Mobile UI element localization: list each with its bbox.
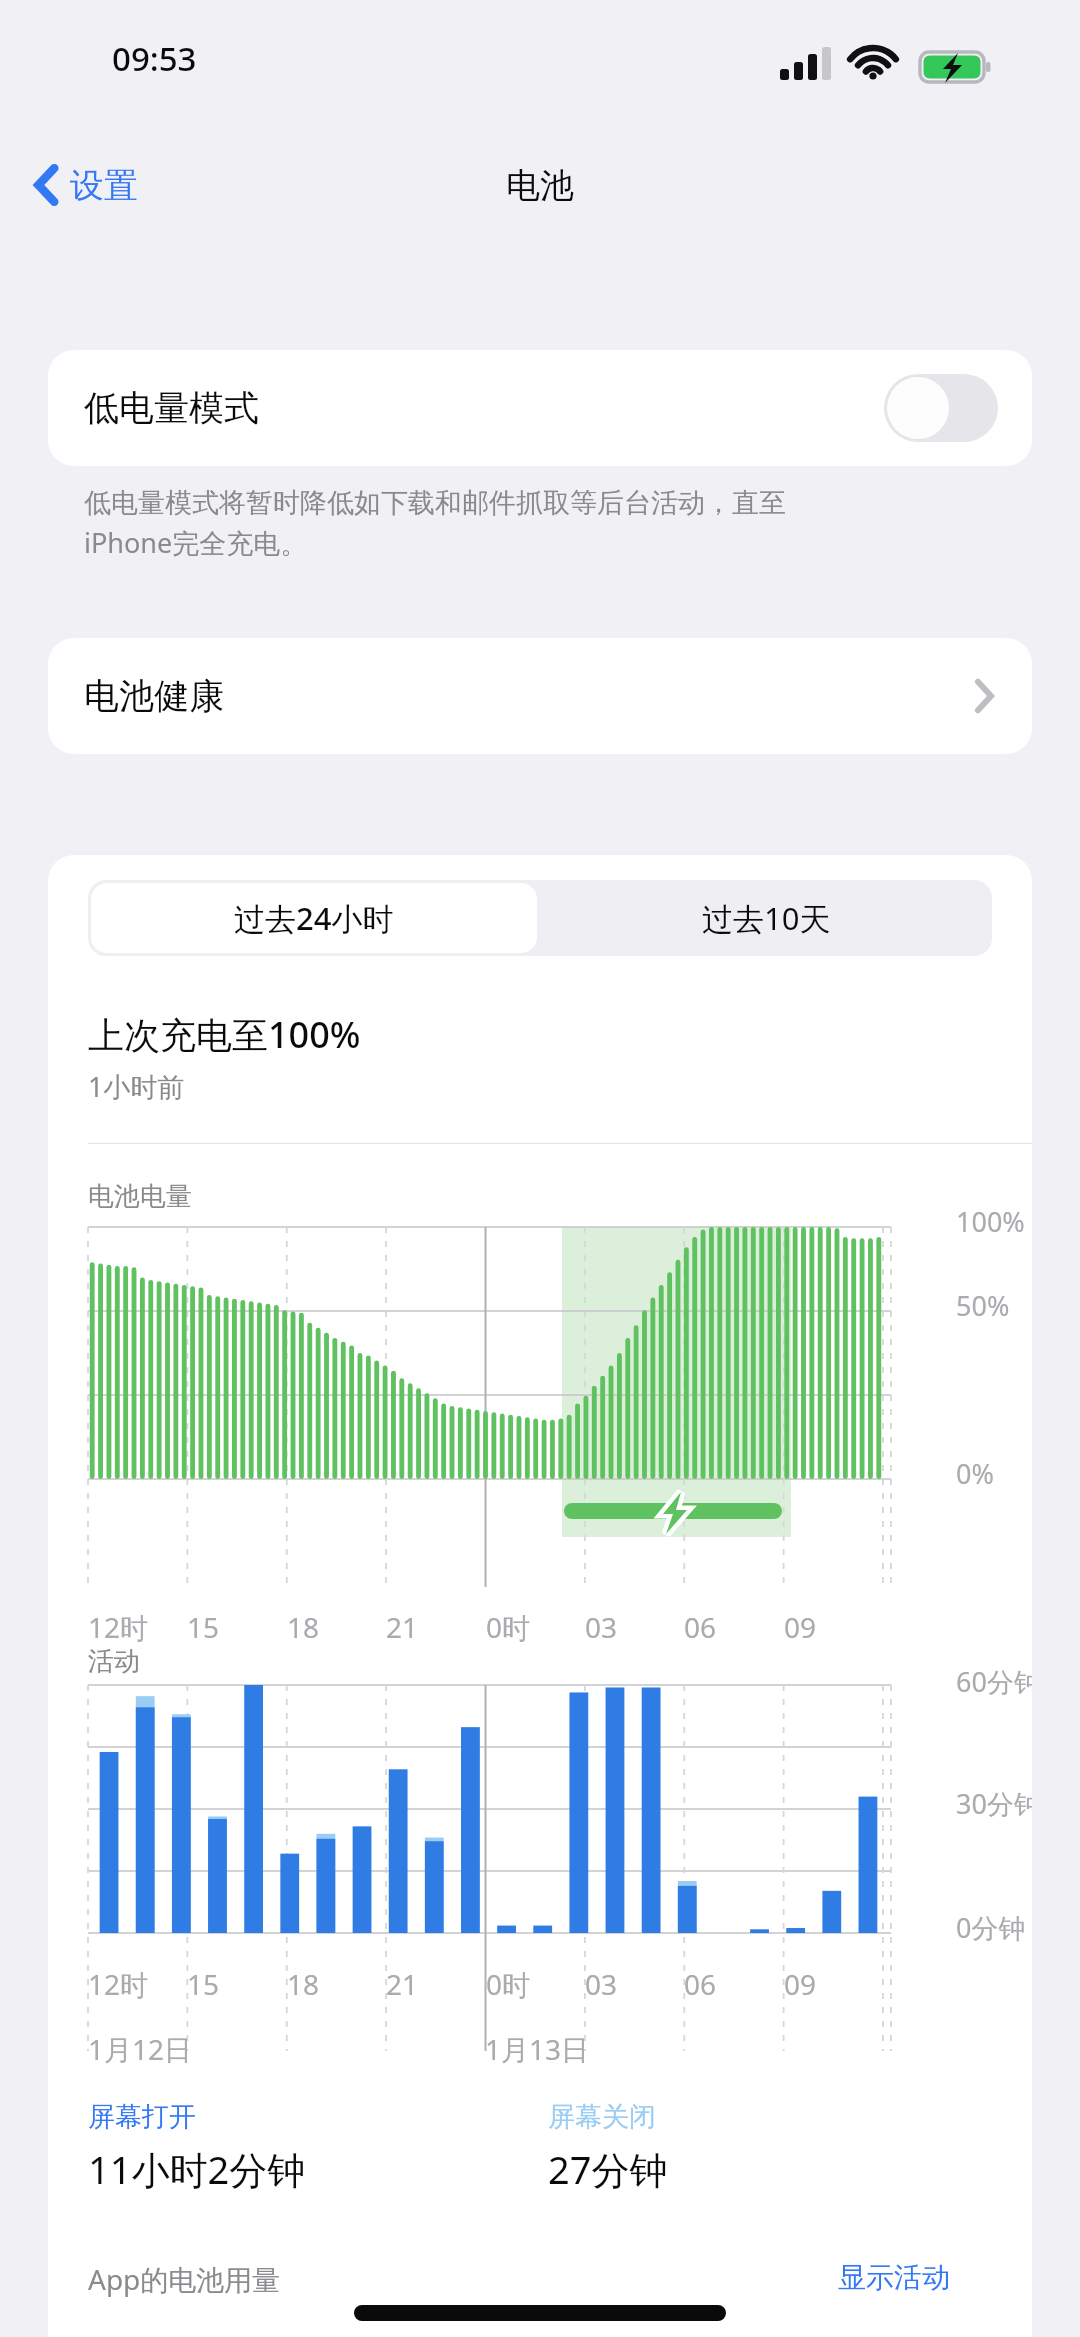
button[interactable]: 显示活动	[838, 2260, 950, 2295]
staticText: 03	[585, 1608, 618, 1646]
button[interactable]: 低电量模式	[48, 350, 1032, 466]
button[interactable]: 屏幕打开	[88, 2100, 196, 2134]
staticText: App的电池用量	[88, 2260, 281, 2298]
staticText: 1月13日	[485, 2030, 590, 2068]
staticText: 18	[287, 1608, 320, 1646]
staticText: 电池	[0, 164, 1080, 207]
staticText: 低电量模式将暂时降低如下载和邮件抓取等后台活动，直至 iPhone完全充电。	[84, 486, 1004, 561]
staticText: 03	[585, 1965, 618, 2003]
staticText: 27分钟	[548, 2143, 668, 2195]
staticText: 06	[684, 1965, 717, 2003]
button[interactable]: 屏幕关闭	[548, 2100, 656, 2134]
staticText: 设置	[70, 164, 138, 207]
staticText: 电池电量	[88, 1180, 192, 1213]
button[interactable]: 低电量模式开关	[884, 374, 998, 442]
staticText: 12时	[88, 1608, 149, 1646]
staticText: 18	[287, 1965, 320, 2003]
staticText: 1月12日	[88, 2030, 193, 2068]
staticText: 11小时2分钟	[88, 2143, 306, 2195]
staticText: 过去24小时	[234, 897, 394, 939]
staticText: 15	[187, 1608, 220, 1646]
staticText: 低电量模式	[84, 386, 259, 430]
staticText: 100%	[956, 1203, 1025, 1240]
staticText: 30分钟	[956, 1785, 1032, 1822]
staticText: 过去10天	[702, 897, 831, 939]
staticText: 21	[386, 1965, 419, 2003]
staticText: 0时	[486, 1965, 531, 2003]
staticText: 0时	[486, 1608, 531, 1646]
staticText: 09	[784, 1608, 817, 1646]
staticText: 12时	[88, 1965, 149, 2003]
staticText: 50%	[956, 1287, 1010, 1324]
button[interactable]: 电池健康	[48, 638, 1032, 754]
staticText: 活动	[88, 1645, 140, 1678]
staticText: 1小时前	[88, 1068, 185, 1105]
button[interactable]: 过去10天	[543, 883, 989, 953]
staticText: 0%	[956, 1455, 994, 1492]
button[interactable]: 过去24小时	[91, 883, 537, 953]
staticText: 电池健康	[84, 674, 224, 718]
staticText: 上次充电至100%	[88, 1010, 361, 1059]
button[interactable]: 设置	[26, 150, 146, 220]
staticText: 09	[784, 1965, 817, 2003]
staticText: 06	[684, 1608, 717, 1646]
staticText: 21	[386, 1608, 419, 1646]
staticText: 15	[187, 1965, 220, 2003]
staticText: 60分钟	[956, 1663, 1032, 1700]
staticText: 0分钟	[956, 1909, 1026, 1946]
staticText: 09:53	[112, 36, 197, 81]
